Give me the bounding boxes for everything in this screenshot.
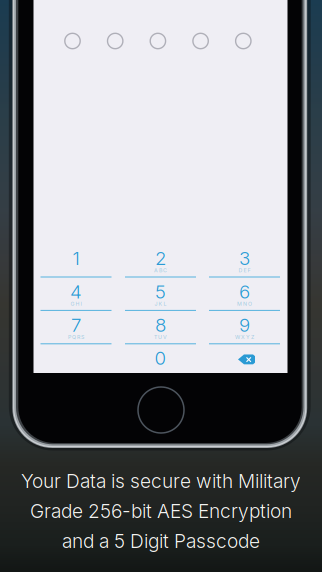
button[interactable]: 8 (125, 311, 196, 345)
staticText: 2 (155, 247, 166, 269)
staticText: G H I (70, 300, 81, 307)
staticText: 1 (72, 247, 79, 269)
button[interactable]: 9 (209, 311, 280, 345)
staticText: Your Data is secure with Military (21, 469, 301, 493)
button[interactable]: 7 (40, 311, 111, 345)
staticText: 6 (239, 280, 250, 303)
staticText: W X Y Z (235, 334, 254, 340)
button[interactable]: 5 (125, 278, 196, 311)
staticText: M N O (237, 300, 252, 307)
staticText: 3 (239, 247, 250, 269)
staticText: Grade 256-bit AES Encryption (30, 499, 292, 523)
staticText: 8 (155, 314, 166, 336)
staticText: P Q R S (68, 334, 84, 340)
staticText: 7 (71, 314, 81, 336)
staticText: 9 (239, 314, 250, 336)
staticText: and a 5 Digit Passcode (62, 529, 260, 553)
button[interactable]: Delete (229, 349, 263, 369)
staticText: 0 (154, 347, 166, 369)
button[interactable]: 6 (209, 278, 280, 311)
staticText: A B C (154, 267, 167, 274)
staticText: 5 (155, 280, 166, 303)
staticText: J K L (154, 300, 166, 307)
staticText: D E F (238, 267, 250, 274)
staticText: 4 (70, 280, 82, 303)
button[interactable]: 2 (125, 245, 196, 278)
staticText: T U V (154, 334, 167, 340)
button[interactable]: 1 (40, 245, 111, 278)
button[interactable]: 3 (209, 245, 280, 278)
button[interactable]: 4 (40, 278, 111, 311)
button[interactable]: 0 (125, 345, 196, 371)
